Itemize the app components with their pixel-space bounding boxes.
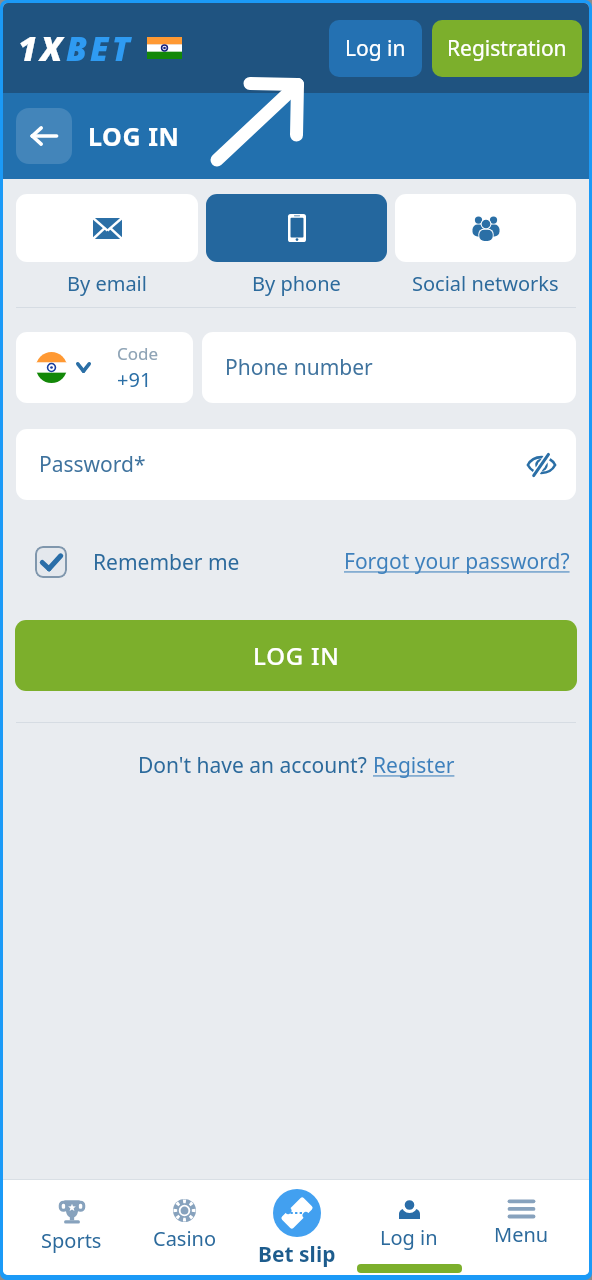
staticText: By email [67, 270, 147, 297]
staticText: Code [117, 342, 159, 365]
button[interactable]: Password* [16, 429, 576, 500]
staticText: Remember me [93, 548, 240, 577]
staticText: +91 [117, 366, 152, 393]
staticText: Log in [345, 34, 406, 63]
button[interactable]: Back [16, 108, 72, 164]
button[interactable]: Registration [432, 20, 582, 77]
staticText: Password* [39, 450, 146, 479]
button[interactable]: Remember me [16, 542, 240, 582]
button[interactable]: Log in [353, 1180, 465, 1275]
staticText: Menu [494, 1221, 549, 1248]
staticText: Don't have an account? [138, 751, 373, 780]
button[interactable]: Log in [329, 20, 422, 77]
staticText: Bet slip [258, 1240, 336, 1269]
staticText: Log in [380, 1224, 438, 1251]
button[interactable]: LOG IN [15, 620, 577, 691]
staticText: Forgot your password? [344, 547, 570, 576]
button[interactable]: Register [373, 751, 455, 780]
button[interactable]: Forgot your password? [343, 541, 571, 582]
staticText: LOG IN [88, 119, 180, 153]
button[interactable]: Casino [128, 1180, 241, 1275]
staticText: Register [373, 751, 455, 780]
button[interactable]: Code [16, 332, 193, 403]
staticText: By phone [252, 270, 341, 297]
button[interactable]: Phone number [202, 332, 576, 403]
staticText: Sports [41, 1227, 102, 1254]
button[interactable]: By phone [206, 194, 387, 297]
staticText: 1X [18, 26, 66, 71]
staticText: BET [66, 26, 134, 71]
button[interactable]: Bet slip [241, 1180, 353, 1275]
staticText: Social networks [412, 270, 559, 297]
staticText: LOG IN [253, 639, 340, 672]
button[interactable]: Social networks [395, 194, 576, 297]
button[interactable]: By email [16, 194, 198, 297]
staticText: Registration [447, 34, 567, 63]
staticText: Phone number [225, 353, 373, 382]
button[interactable]: Menu [465, 1180, 577, 1275]
button[interactable]: Show password [521, 445, 561, 485]
staticText: Casino [153, 1225, 217, 1252]
button[interactable]: Sports [15, 1180, 128, 1275]
